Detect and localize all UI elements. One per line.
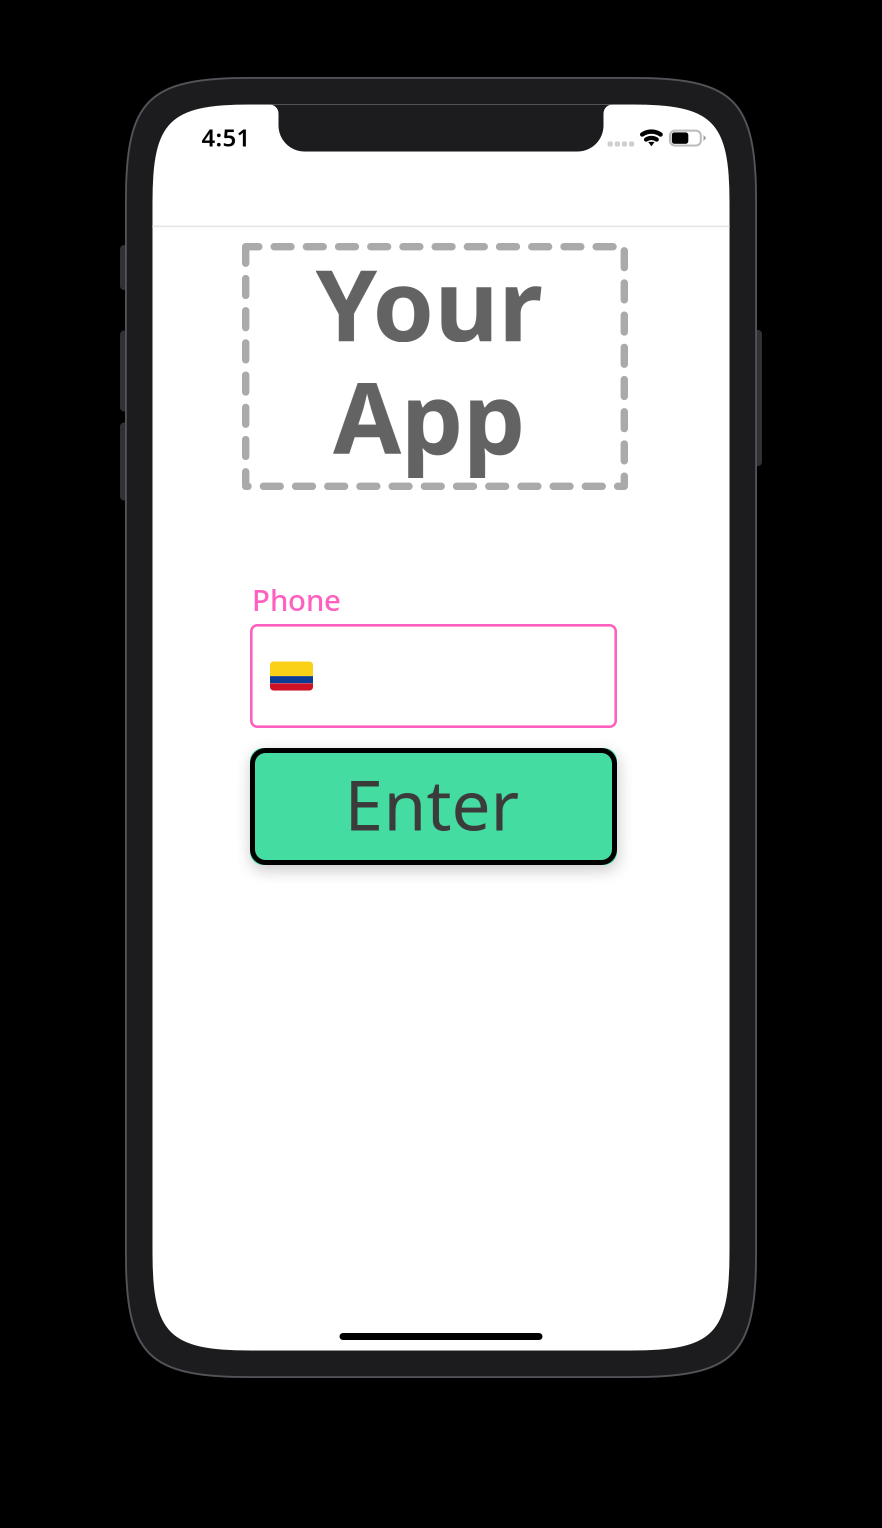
button[interactable]: Enter [250,748,617,865]
staticText: App [333,350,525,481]
staticText: Phone [252,580,341,619]
button[interactable]: Phone number [250,624,617,728]
staticText: Enter [344,757,519,850]
staticText: Your [315,237,542,368]
staticText: 4:51 [201,121,250,153]
